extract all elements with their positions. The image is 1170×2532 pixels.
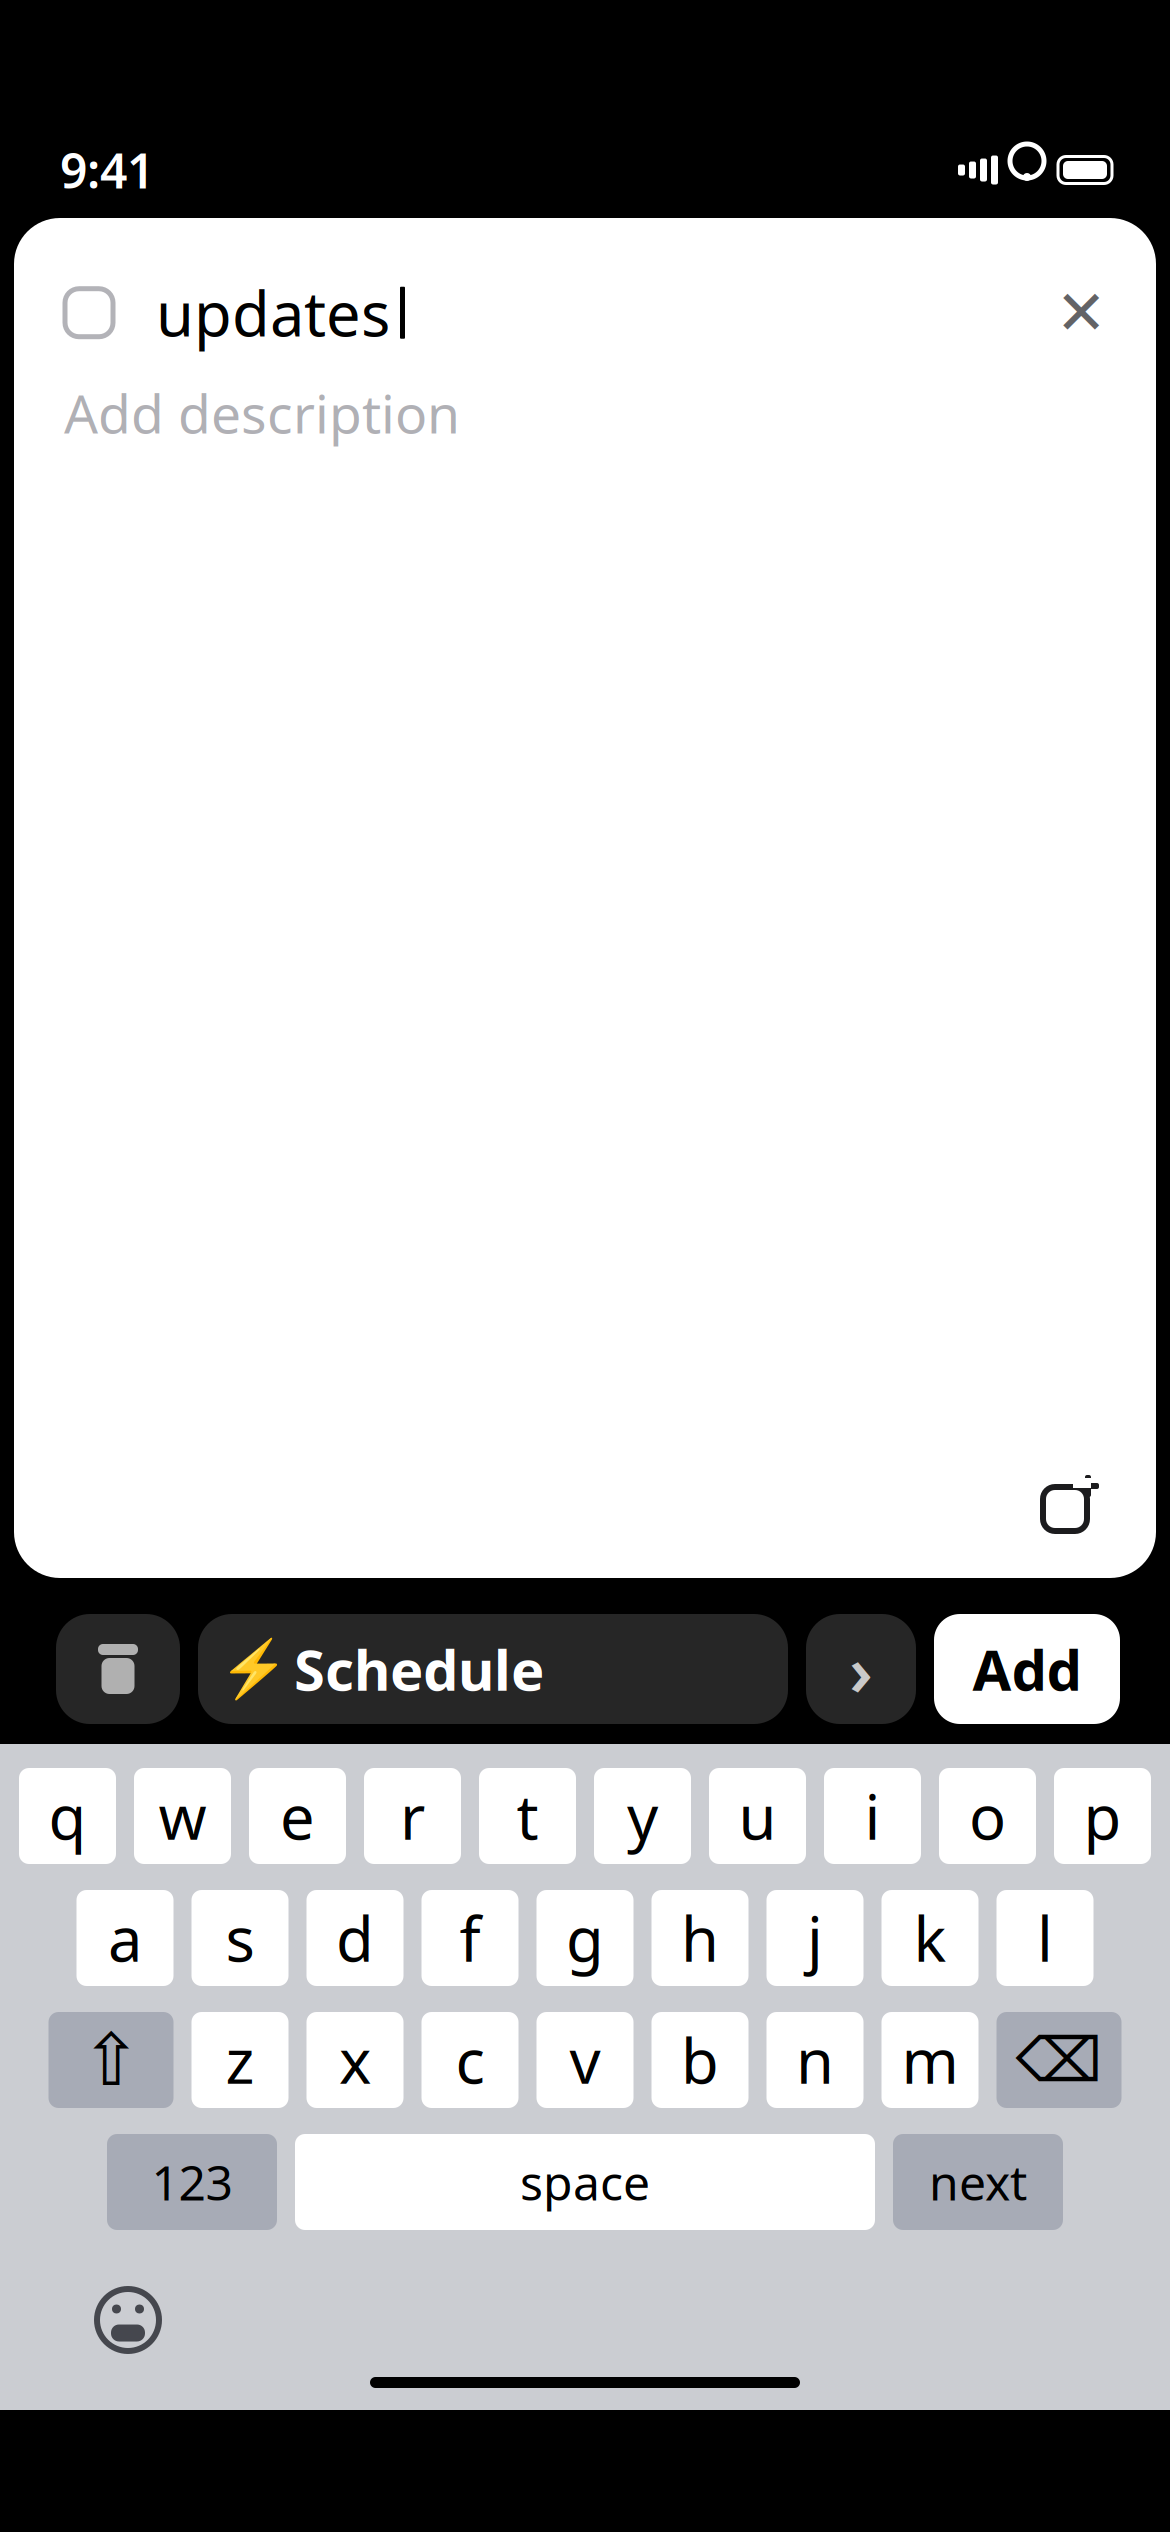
button[interactable]: h: [651, 1890, 748, 1986]
button[interactable]: t: [479, 1768, 576, 1864]
button[interactable]: a: [76, 1890, 173, 1986]
staticText: e: [280, 1775, 315, 1857]
staticText: q: [48, 1775, 86, 1857]
button[interactable]: x: [306, 2012, 403, 2108]
button[interactable]: c: [421, 2012, 518, 2108]
staticText: ›: [849, 1623, 873, 1715]
button[interactable]: q: [19, 1768, 116, 1864]
staticText: v: [569, 2019, 600, 2101]
button[interactable]: ⚡: [198, 1614, 788, 1724]
staticText: k: [913, 1897, 946, 1979]
staticText: l: [1037, 1897, 1053, 1979]
button[interactable]: j: [766, 1890, 863, 1986]
staticText: Add description: [64, 377, 460, 448]
staticText: ✕: [1055, 278, 1106, 347]
button[interactable]: b: [651, 2012, 748, 2108]
staticText: m: [901, 2019, 958, 2101]
button[interactable]: p: [1054, 1768, 1151, 1864]
staticText: space: [520, 2150, 650, 2214]
button[interactable]: Mark complete: [52, 276, 126, 350]
staticText: d: [336, 1897, 374, 1979]
button[interactable]: v: [536, 2012, 633, 2108]
staticText: next: [929, 2150, 1027, 2214]
staticText: h: [681, 1897, 719, 1979]
staticText: x: [339, 2019, 371, 2101]
staticText: s: [225, 1897, 254, 1979]
button[interactable]: Emoji: [88, 2280, 168, 2360]
staticText: ⌫: [1015, 2025, 1102, 2095]
button[interactable]: k: [881, 1890, 978, 1986]
button[interactable]: f: [421, 1890, 518, 1986]
button[interactable]: Delete task: [56, 1614, 180, 1724]
staticText: Schedule: [294, 1632, 544, 1706]
button[interactable]: More options: [806, 1614, 916, 1724]
button[interactable]: Shift: [48, 2012, 173, 2108]
staticText: ⚡: [219, 1637, 289, 1701]
button[interactable]: Add: [934, 1614, 1120, 1724]
button[interactable]: w: [134, 1768, 231, 1864]
button[interactable]: z: [191, 2012, 288, 2108]
staticText: y: [627, 1775, 658, 1857]
staticText: c: [455, 2019, 484, 2101]
staticText: j: [807, 1897, 823, 1979]
staticText: 123: [151, 2150, 232, 2214]
staticText: a: [108, 1897, 142, 1979]
staticText: updates: [156, 272, 390, 353]
staticText: p: [1083, 1775, 1121, 1857]
button[interactable]: i: [824, 1768, 921, 1864]
button[interactable]: 123: [107, 2134, 277, 2230]
button[interactable]: Delete: [996, 2012, 1121, 2108]
staticText: f: [459, 1897, 480, 1979]
button[interactable]: e: [249, 1768, 346, 1864]
button[interactable]: d: [306, 1890, 403, 1986]
button[interactable]: m: [881, 2012, 978, 2108]
staticText: w: [158, 1775, 206, 1857]
button[interactable]: next: [893, 2134, 1063, 2230]
staticText: o: [969, 1775, 1006, 1857]
button[interactable]: g: [536, 1890, 633, 1986]
staticText: u: [738, 1775, 776, 1857]
button[interactable]: Close: [1042, 274, 1120, 352]
button[interactable]: Add subtask: [1026, 1462, 1112, 1548]
button[interactable]: l: [996, 1890, 1093, 1986]
button[interactable]: u: [709, 1768, 806, 1864]
staticText: r: [400, 1775, 425, 1857]
staticText: n: [796, 2019, 834, 2101]
button[interactable]: Add description: [64, 377, 460, 448]
staticText: t: [516, 1775, 538, 1857]
button[interactable]: space: [295, 2134, 875, 2230]
staticText: i: [864, 1775, 880, 1857]
staticText: b: [681, 2019, 719, 2101]
staticText: g: [566, 1897, 604, 1979]
button[interactable]: r: [364, 1768, 461, 1864]
button[interactable]: s: [191, 1890, 288, 1986]
staticText: z: [225, 2019, 254, 2101]
button[interactable]: o: [939, 1768, 1036, 1864]
staticText: Add: [972, 1632, 1081, 1706]
button[interactable]: n: [766, 2012, 863, 2108]
staticText: 9:41: [60, 138, 154, 202]
button[interactable]: y: [594, 1768, 691, 1864]
staticText: ⇧: [81, 2019, 141, 2101]
